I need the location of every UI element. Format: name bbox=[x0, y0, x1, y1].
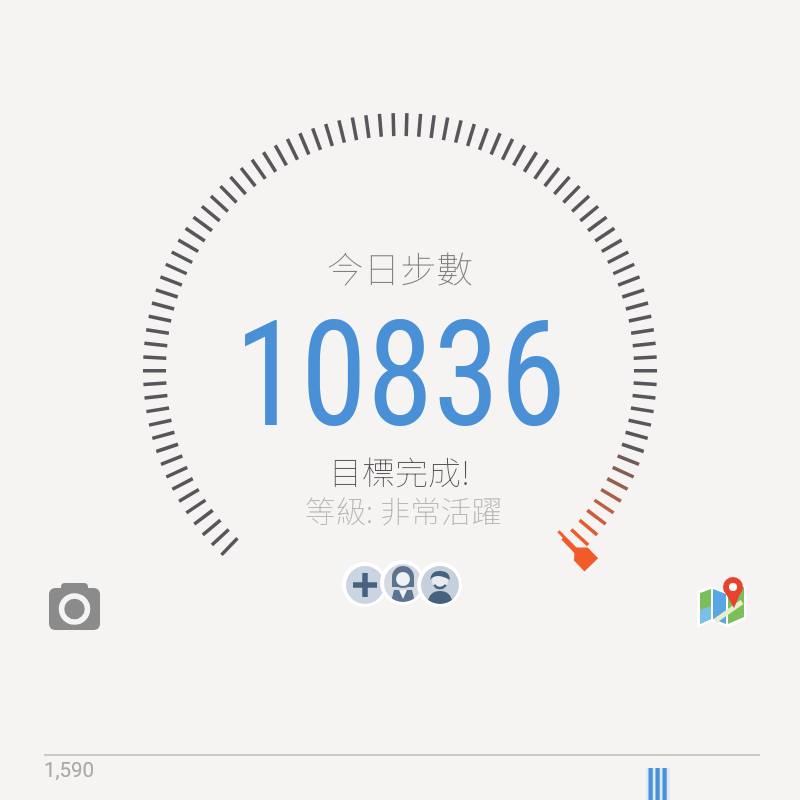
staticText: 1,590 bbox=[44, 758, 95, 782]
staticText: 10836 bbox=[234, 290, 566, 461]
staticText: 等級: 非常活躍 bbox=[305, 488, 502, 532]
button[interactable] bbox=[417, 562, 462, 607]
staticText: 今日步數 bbox=[327, 241, 473, 294]
button[interactable] bbox=[342, 562, 387, 607]
staticText: 目標完成! bbox=[329, 447, 471, 495]
button[interactable] bbox=[646, 768, 670, 800]
button[interactable] bbox=[45, 580, 105, 640]
button[interactable] bbox=[695, 570, 757, 632]
button[interactable] bbox=[380, 560, 425, 605]
